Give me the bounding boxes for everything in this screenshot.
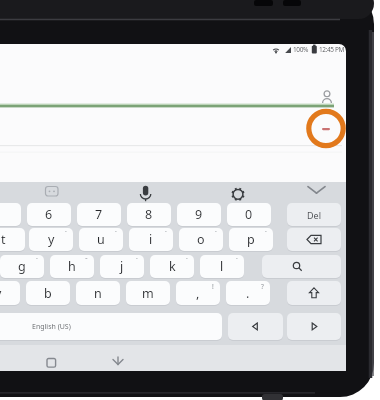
staticText: m <box>142 285 154 302</box>
staticText: o <box>197 231 205 248</box>
staticText: 9 <box>195 206 203 223</box>
staticText: ˆ <box>85 256 88 265</box>
staticText: . <box>246 285 250 302</box>
staticText: 7 <box>95 206 103 223</box>
staticText: ˊ <box>236 256 238 265</box>
staticText: ˊ <box>265 229 267 238</box>
button[interactable]: l <box>200 255 244 278</box>
button[interactable] <box>41 182 63 201</box>
button[interactable]: o <box>179 228 223 251</box>
button[interactable]: y <box>29 228 73 251</box>
staticText: y <box>48 231 55 248</box>
staticText: ˊ <box>186 256 188 265</box>
staticText: ? <box>261 282 264 291</box>
staticText: ˊ <box>65 229 67 238</box>
staticText: h <box>68 258 76 275</box>
button[interactable]: p <box>229 228 273 251</box>
button[interactable] <box>0 203 21 226</box>
staticText: v <box>0 285 2 302</box>
staticText: t <box>1 231 6 248</box>
button[interactable]: b <box>26 281 70 305</box>
button[interactable]: 6 <box>27 203 71 226</box>
button[interactable] <box>305 182 327 201</box>
button[interactable] <box>287 228 341 251</box>
staticText: p <box>247 231 255 248</box>
button[interactable]: . <box>226 281 270 305</box>
staticText: 6 <box>45 206 53 223</box>
button[interactable]: g <box>0 255 44 278</box>
staticText: k <box>169 258 176 275</box>
staticText: ˊ <box>215 229 217 238</box>
button[interactable]: 0 <box>227 203 271 226</box>
button[interactable]: , <box>176 281 220 305</box>
button[interactable] <box>41 352 62 371</box>
staticText: Del <box>307 209 321 221</box>
staticText: ˊ <box>165 229 167 238</box>
staticText: ˊ <box>115 229 117 238</box>
button[interactable] <box>316 119 336 139</box>
staticText: 100% <box>293 45 308 54</box>
button[interactable]: English (US) <box>0 313 222 340</box>
button[interactable]: v <box>0 281 20 305</box>
button[interactable]: u <box>79 228 123 251</box>
button[interactable]: 8 <box>127 203 171 226</box>
button[interactable]: k <box>150 255 194 278</box>
staticText: 8 <box>145 206 153 223</box>
button[interactable] <box>228 313 283 340</box>
button[interactable] <box>135 182 157 201</box>
button[interactable]: n <box>76 281 120 305</box>
staticText: b <box>44 285 52 302</box>
staticText: j <box>120 258 124 275</box>
button[interactable] <box>227 182 249 201</box>
staticText: 0 <box>245 206 253 223</box>
button[interactable]: h <box>50 255 94 278</box>
staticText: l <box>220 258 224 275</box>
button[interactable]: t <box>0 228 25 251</box>
button[interactable]: m <box>126 281 170 305</box>
staticText: i <box>149 231 153 248</box>
staticText: u <box>97 231 105 248</box>
button[interactable] <box>287 281 341 305</box>
staticText: ˊ <box>136 256 138 265</box>
button[interactable]: 9 <box>177 203 221 226</box>
button[interactable] <box>107 352 128 371</box>
staticText: , <box>196 285 200 302</box>
button[interactable]: i <box>129 228 173 251</box>
button[interactable] <box>287 313 341 340</box>
staticText: English (US) <box>32 322 71 332</box>
button[interactable] <box>262 255 341 278</box>
staticText: g <box>18 258 26 275</box>
staticText: ˋ <box>36 256 38 265</box>
staticText: 12:45 PM <box>319 45 344 54</box>
button[interactable]: Del <box>287 203 341 226</box>
staticText: n <box>94 285 102 302</box>
staticText: ! <box>212 282 214 291</box>
button[interactable]: 7 <box>77 203 121 226</box>
button[interactable]: j <box>100 255 144 278</box>
